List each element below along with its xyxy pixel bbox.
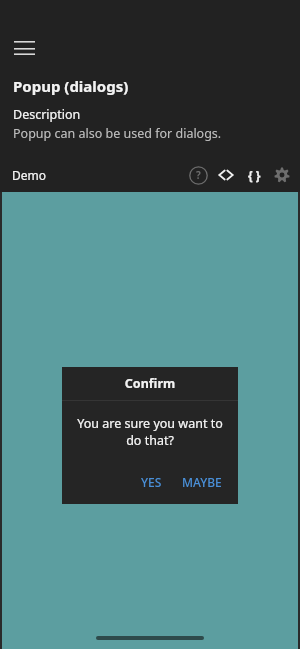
staticText: { }: [248, 167, 261, 183]
button[interactable]: Settings: [268, 161, 296, 189]
staticText: YES: [141, 474, 162, 490]
staticText: Description: [13, 106, 81, 123]
staticText: You are sure you want to do that?: [76, 415, 224, 448]
button[interactable]: MAYBE: [176, 470, 228, 494]
button[interactable]: YES: [135, 470, 168, 494]
staticText: Confirm: [62, 375, 238, 392]
button[interactable]: Help: [184, 161, 212, 189]
button[interactable]: View JSON: [240, 161, 268, 189]
staticText: Popup (dialogs): [13, 76, 129, 96]
staticText: Demo: [12, 167, 47, 183]
button[interactable]: Demo: [0, 161, 59, 189]
button[interactable]: View source code: [212, 161, 240, 189]
button[interactable]: Open navigation menu: [4, 28, 44, 68]
staticText: ?: [196, 168, 201, 182]
staticText: Popup can also be used for dialogs.: [13, 125, 222, 142]
staticText: MAYBE: [182, 474, 222, 490]
